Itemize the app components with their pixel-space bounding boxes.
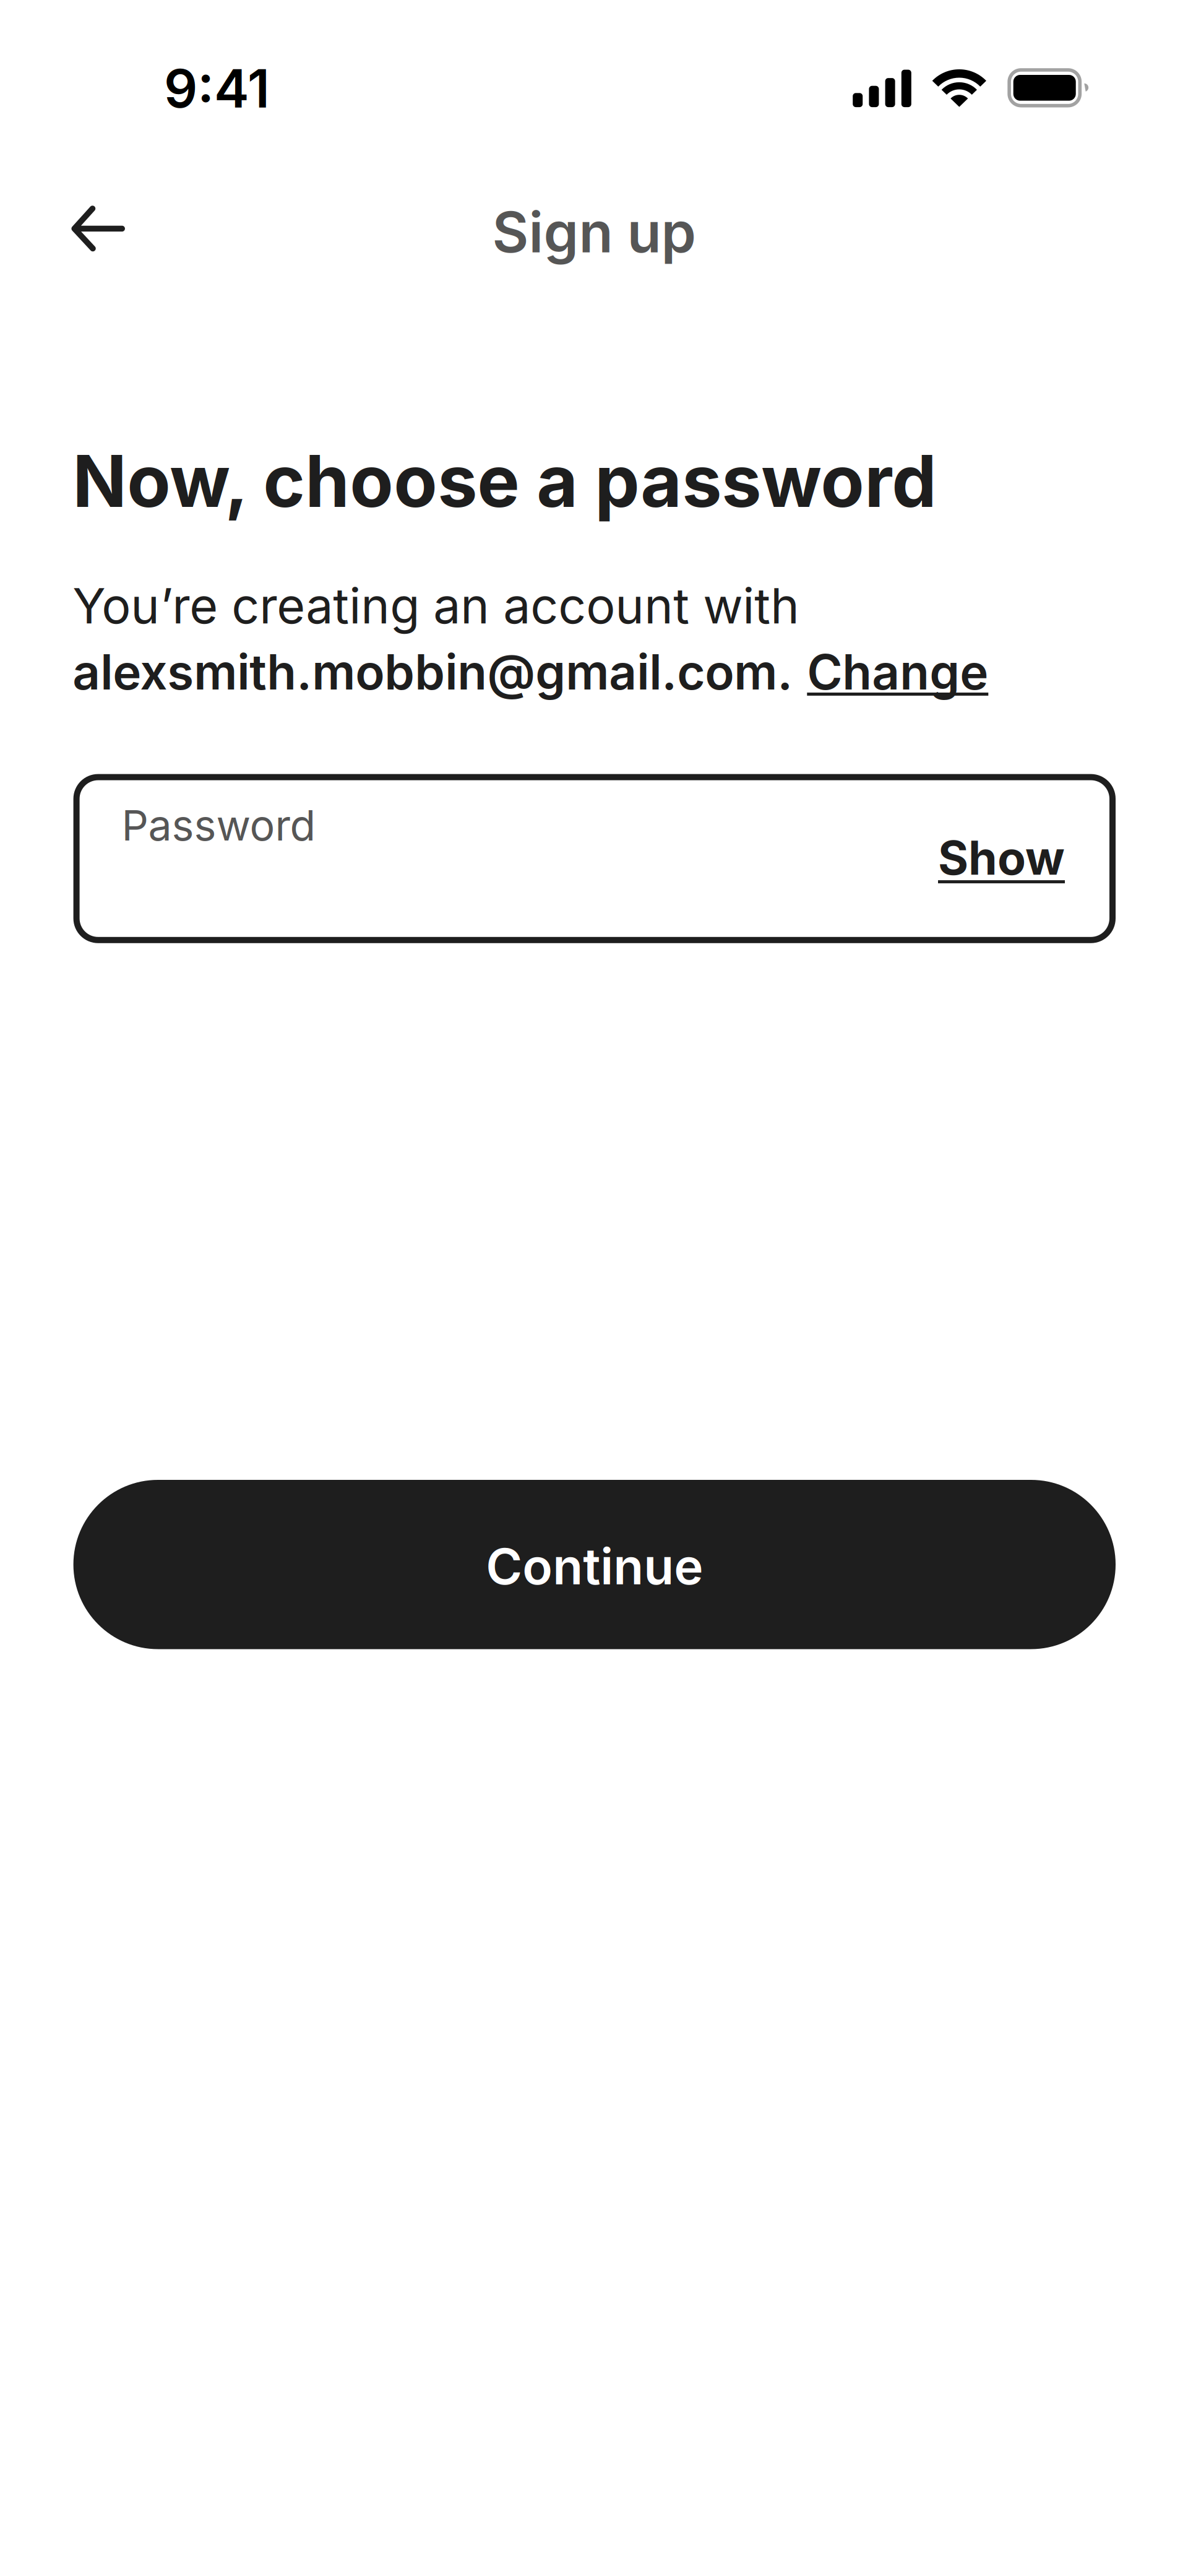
staticText: alexsmith.mobbin@gmail.com.	[73, 643, 793, 701]
staticText: Show	[938, 830, 1065, 886]
staticText: 9:41	[164, 57, 270, 120]
staticText: Password	[122, 800, 316, 851]
staticText: You’re creating an account with	[73, 576, 800, 635]
button[interactable]: Show	[938, 830, 1065, 886]
staticText: Now, choose a password	[73, 438, 936, 524]
button[interactable]: Back	[36, 164, 169, 297]
button[interactable]: Change	[807, 643, 988, 701]
staticText: Sign up	[492, 198, 696, 266]
button[interactable]: Password	[73, 774, 1116, 943]
staticText: Continue	[486, 1536, 703, 1596]
button[interactable]: Continue	[73, 1480, 1116, 1649]
staticText: Change	[807, 643, 988, 701]
